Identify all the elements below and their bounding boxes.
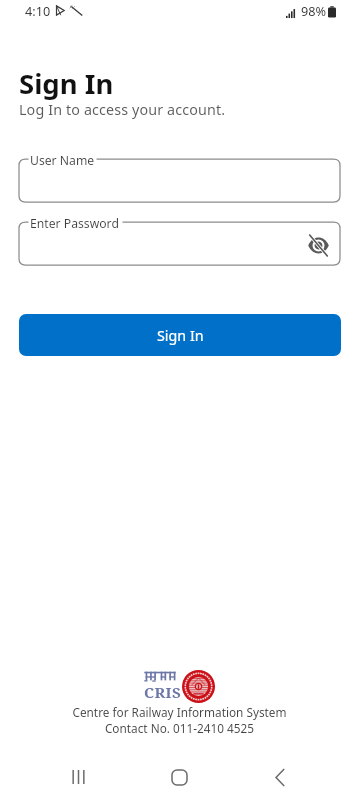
button[interactable]: Back: [258, 755, 302, 799]
staticText: Centre for Railway Information System: [0, 704, 359, 720]
staticText: CRIS: [144, 682, 182, 702]
staticText: Enter Password: [30, 215, 119, 232]
button[interactable]: Toggle password visibility: [304, 231, 332, 259]
button[interactable]: Home: [157, 755, 201, 799]
staticText: Sign In: [19, 65, 114, 102]
staticText: User Name: [30, 152, 95, 169]
staticText: Contact No. 011-2410 4525: [0, 720, 359, 736]
button[interactable]: Enter Password: [19, 214, 340, 266]
button[interactable]: User Name: [19, 151, 340, 203]
staticText: 4:10: [25, 2, 51, 19]
staticText: 98%: [301, 2, 327, 19]
staticText: Sign In: [157, 326, 204, 345]
button[interactable]: Recent apps: [56, 755, 100, 799]
staticText: Log In to access your account.: [19, 100, 226, 119]
button[interactable]: Sign In: [19, 314, 341, 356]
